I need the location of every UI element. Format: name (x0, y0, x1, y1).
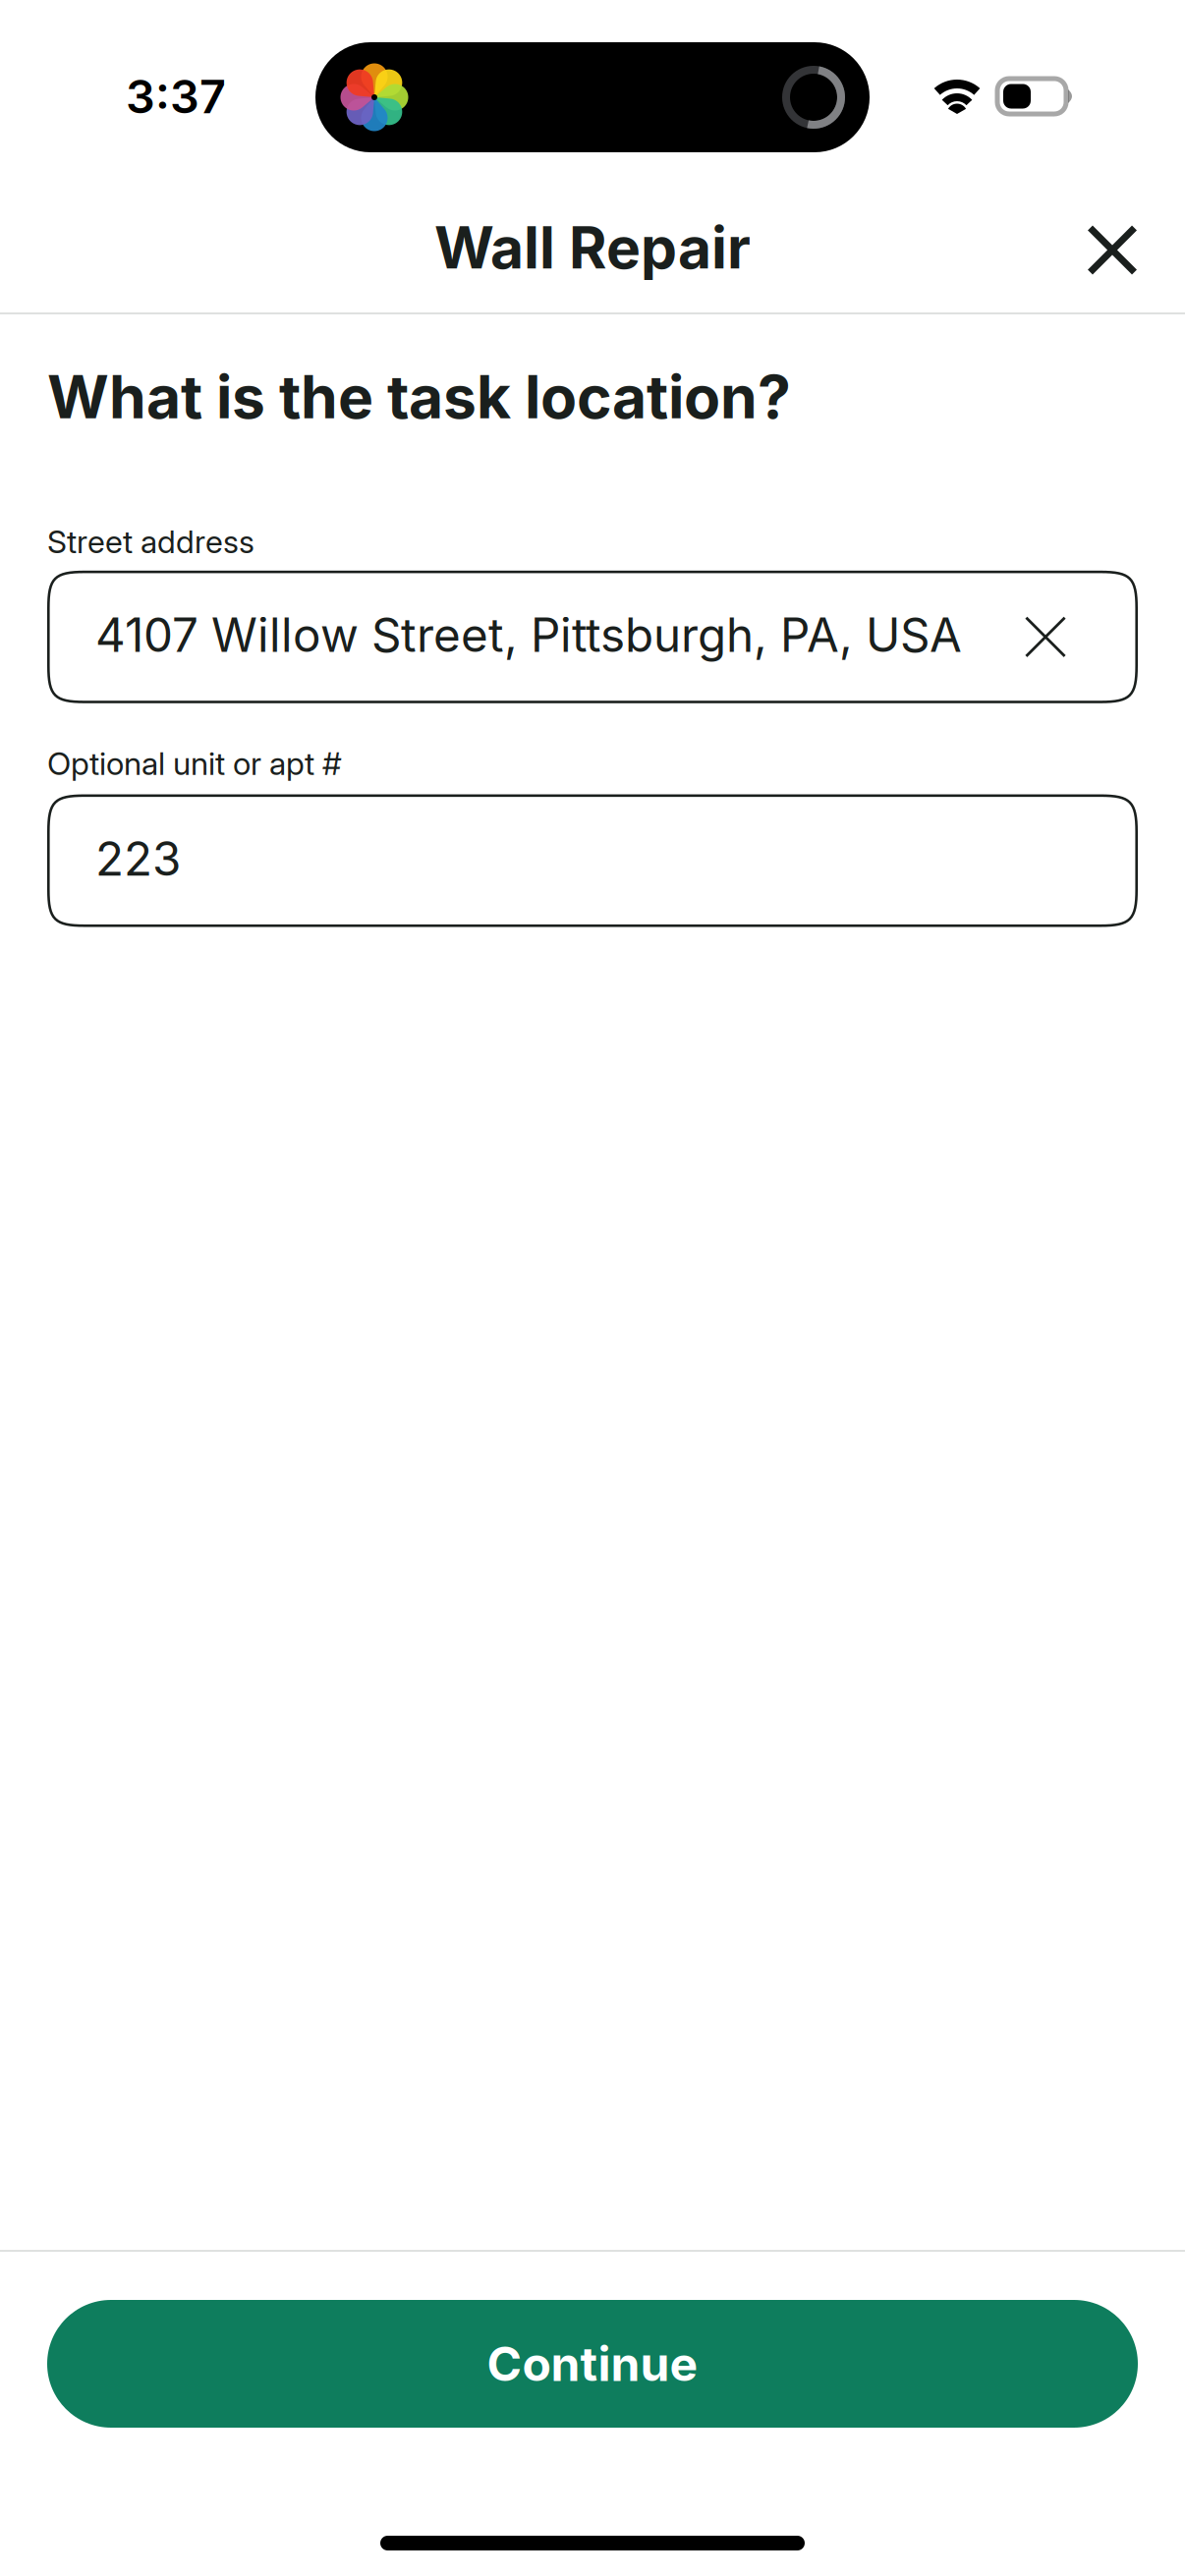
staticText: 3:37 (126, 69, 226, 124)
staticText: 223 (95, 830, 181, 887)
button[interactable]: 4107 Willow Street, Pittsburgh, PA, USA (47, 571, 1138, 703)
button[interactable]: Clear street address (999, 571, 1092, 703)
staticText: 4107 Willow Street, Pittsburgh, PA, USA (95, 607, 962, 663)
staticText: Street address (47, 523, 254, 561)
button[interactable]: 223 (47, 794, 1138, 927)
staticText: Wall Repair (434, 213, 751, 282)
staticText: What is the task location? (47, 361, 791, 432)
staticText: Optional unit or apt # (47, 745, 342, 783)
staticText: Continue (487, 2335, 698, 2392)
button[interactable]: Close (1058, 196, 1166, 304)
button[interactable]: Continue (47, 2300, 1138, 2428)
